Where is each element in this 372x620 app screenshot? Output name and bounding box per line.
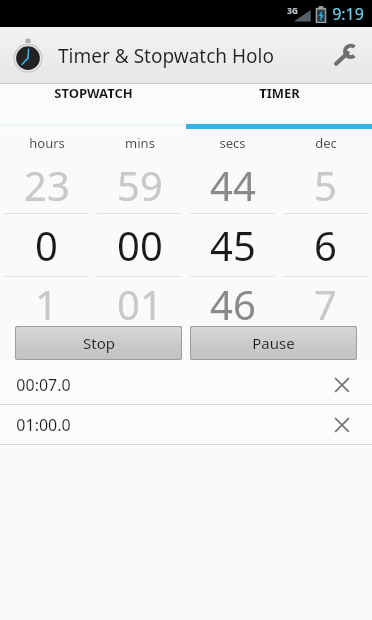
- staticText: hours: [29, 134, 65, 152]
- staticText: Pause: [252, 333, 295, 353]
- staticText: 5: [314, 158, 337, 212]
- staticText: Timer & Stopwatch Holo: [58, 43, 274, 69]
- button[interactable]: TIMER: [186, 84, 372, 102]
- staticText: TIMER: [259, 84, 300, 102]
- staticText: Stop: [83, 333, 115, 353]
- staticText: 7: [314, 277, 337, 321]
- staticText: 3G: [287, 5, 298, 16]
- staticText: dec: [315, 134, 337, 152]
- staticText: 01: [117, 277, 163, 321]
- staticText: 59: [117, 158, 163, 212]
- staticText: secs: [219, 134, 246, 152]
- staticText: 01:00.0: [16, 414, 71, 436]
- button[interactable]: 5: [279, 156, 372, 213]
- button[interactable]: STOPWATCH: [0, 84, 186, 102]
- button[interactable]: 00:07.0: [0, 365, 372, 404]
- button[interactable]: 23: [0, 156, 93, 213]
- staticText: 1: [35, 277, 58, 321]
- staticText: 23: [24, 158, 70, 212]
- staticText: 0: [35, 218, 58, 272]
- staticText: 6: [314, 218, 337, 272]
- button[interactable]: 7: [279, 277, 372, 321]
- button[interactable]: 1: [0, 277, 93, 321]
- button[interactable]: 59: [93, 156, 186, 213]
- button[interactable]: 46: [186, 277, 279, 321]
- button[interactable]: Pause: [191, 327, 356, 359]
- button[interactable]: 01:00.0: [0, 405, 372, 444]
- button[interactable]: 44: [186, 156, 279, 213]
- staticText: mins: [125, 134, 155, 152]
- button[interactable]: Settings: [318, 29, 372, 83]
- staticText: STOPWATCH: [54, 84, 133, 102]
- button[interactable]: 0: [0, 214, 93, 276]
- staticText: 00:07.0: [16, 374, 71, 396]
- button[interactable]: Delete: [326, 369, 358, 401]
- staticText: 46: [210, 277, 256, 321]
- button[interactable]: 00: [93, 214, 186, 276]
- button[interactable]: 45: [186, 214, 279, 276]
- button[interactable]: Stop: [16, 327, 181, 359]
- button[interactable]: 01: [93, 277, 186, 321]
- button[interactable]: Delete: [326, 409, 358, 441]
- button[interactable]: 6: [279, 214, 372, 276]
- staticText: 9:19: [332, 3, 364, 25]
- staticText: 00: [117, 218, 163, 272]
- staticText: 45: [210, 218, 256, 272]
- staticText: 44: [210, 158, 256, 212]
